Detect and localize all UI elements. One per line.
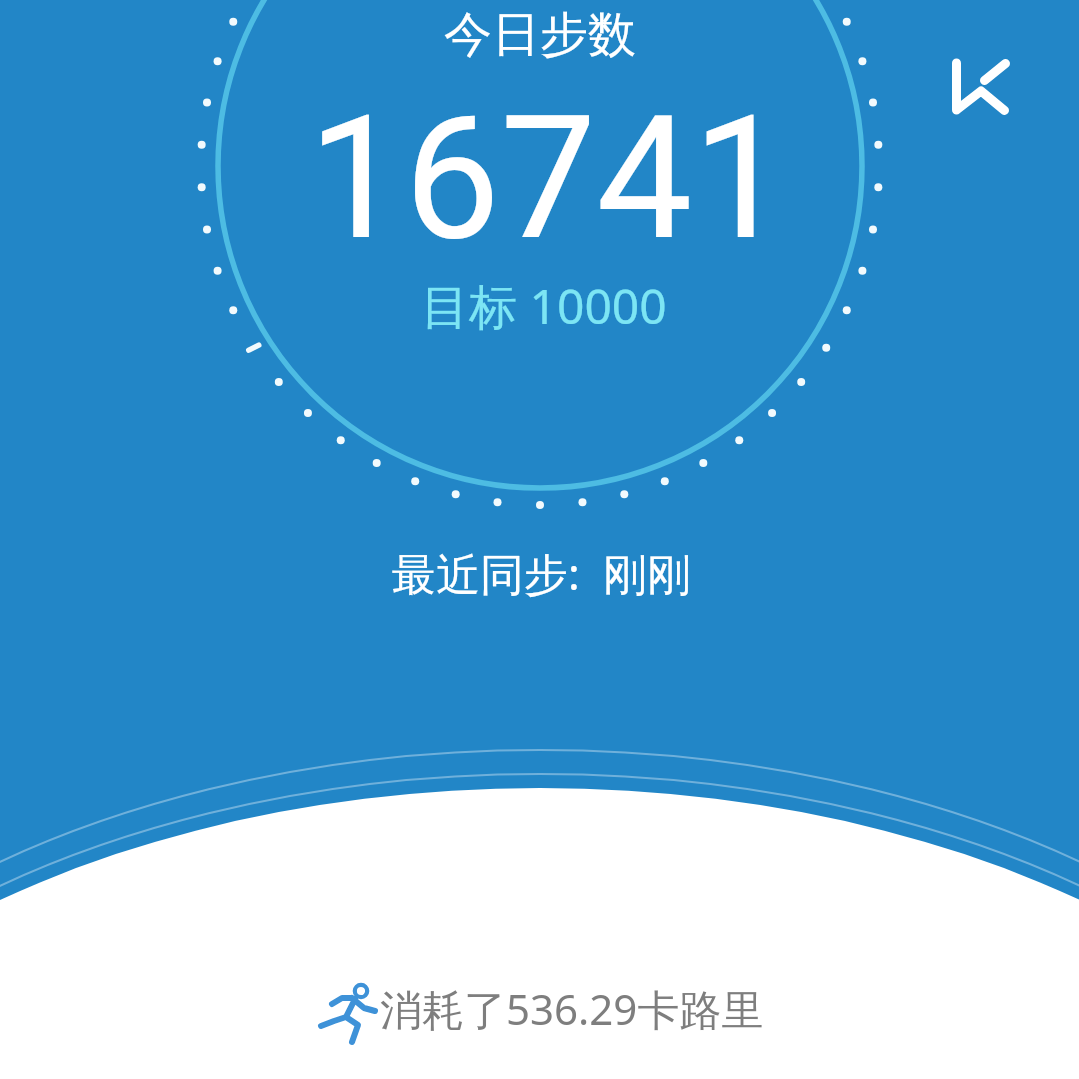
- staticText: 消耗了536.29卡路里: [380, 980, 764, 1037]
- staticText: 目标 10000: [421, 273, 667, 339]
- staticText: 最近同步: 刚刚: [392, 543, 691, 603]
- staticText: 16741: [308, 78, 789, 278]
- button[interactable]: [944, 50, 1016, 122]
- button[interactable]: 消耗了536.29卡路里: [316, 980, 764, 1037]
- staticText: 今日步数: [444, 5, 636, 65]
